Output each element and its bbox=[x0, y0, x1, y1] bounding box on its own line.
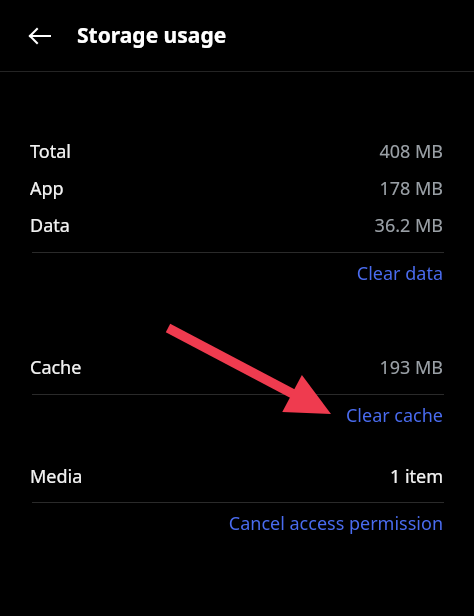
staticText: 193 MB bbox=[379, 355, 443, 380]
button[interactable]: Cache bbox=[0, 349, 474, 385]
button[interactable]: Back bbox=[20, 16, 60, 56]
staticText: Cache bbox=[30, 355, 82, 380]
staticText: 408 MB bbox=[379, 139, 443, 164]
staticText: Clear data bbox=[356, 261, 443, 286]
staticText: Clear cache bbox=[345, 403, 443, 428]
staticText: 36.2 MB bbox=[374, 213, 443, 238]
staticText: App bbox=[30, 176, 64, 201]
button[interactable]: Media bbox=[0, 458, 474, 494]
staticText: Total bbox=[30, 139, 71, 164]
staticText: Storage usage bbox=[77, 21, 227, 50]
staticText: Media bbox=[30, 464, 83, 489]
staticText: 1 item bbox=[389, 464, 443, 489]
staticText: Cancel access permission bbox=[228, 511, 443, 536]
staticText: Data bbox=[30, 213, 70, 238]
button[interactable]: Cancel access permission bbox=[0, 503, 474, 544]
button[interactable]: App bbox=[0, 170, 474, 206]
staticText: 178 MB bbox=[379, 176, 443, 201]
button[interactable]: Total bbox=[0, 133, 474, 169]
button[interactable]: Clear data bbox=[0, 253, 474, 294]
button[interactable]: Data bbox=[0, 207, 474, 243]
button[interactable]: Clear cache bbox=[0, 395, 474, 436]
